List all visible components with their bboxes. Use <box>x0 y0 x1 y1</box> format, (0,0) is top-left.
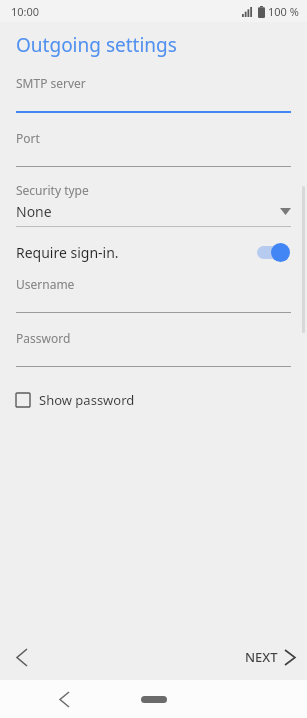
button[interactable]: Username <box>0 276 307 313</box>
staticText: Outgoing settings <box>16 32 177 58</box>
staticText: Username <box>16 276 75 292</box>
button[interactable]: Home <box>141 696 167 703</box>
staticText: Password <box>16 330 71 346</box>
button[interactable]: Require sign-in. <box>0 234 307 270</box>
button[interactable]: Security type <box>0 182 307 227</box>
button[interactable]: Show password <box>0 387 151 413</box>
button[interactable]: Port <box>0 130 307 167</box>
staticText: 10:00 <box>11 4 40 19</box>
staticText: Port <box>16 130 40 146</box>
button[interactable]: Back <box>44 680 84 718</box>
staticText: Require sign-in. <box>16 243 255 262</box>
staticText: Security type <box>16 182 89 198</box>
button[interactable]: Password <box>0 330 307 367</box>
staticText: 100 % <box>268 4 299 19</box>
staticText: NEXT <box>245 648 278 666</box>
button[interactable]: NEXT <box>233 638 307 676</box>
staticText: None <box>16 202 280 221</box>
button[interactable]: SMTP server <box>0 75 307 113</box>
staticText: SMTP server <box>16 75 86 91</box>
staticText: Show password <box>39 391 135 409</box>
button[interactable]: Back <box>0 635 44 679</box>
